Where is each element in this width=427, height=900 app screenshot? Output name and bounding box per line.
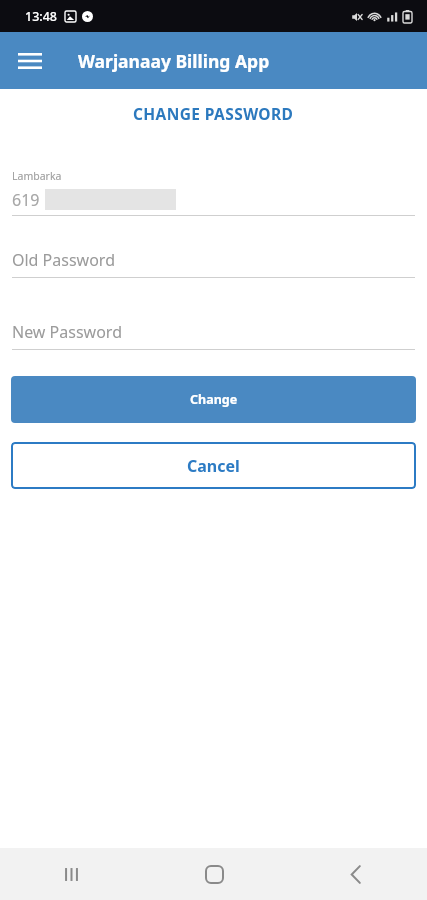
staticText: Lambarka [12,169,62,183]
staticText: Cancel [187,455,240,477]
staticText: CHANGE PASSWORD [133,103,294,124]
staticText: Warjanaay Billing App [78,49,270,73]
button[interactable]: Home [143,848,285,900]
button[interactable]: Recent apps [0,848,143,900]
staticText: New Password [12,321,122,343]
button[interactable]: Cancel [11,442,416,489]
staticText: 13:48 [25,8,58,25]
button[interactable]: Open navigation menu [10,41,50,81]
staticText: 619 [12,189,40,211]
button[interactable]: Change [11,376,416,423]
staticText: Change [190,391,238,408]
button[interactable]: Back [285,848,427,900]
staticText: Old Password [12,249,115,271]
